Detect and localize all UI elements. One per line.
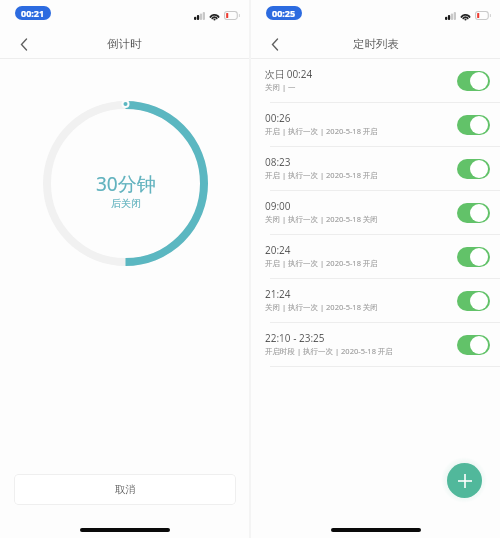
button[interactable]: Toggle alarm xyxy=(457,335,490,355)
staticText: 00:21 xyxy=(21,7,45,19)
staticText: 关闭 | 执行一次 | 2020-5-18 关闭 xyxy=(265,214,378,224)
staticText: 08:23 xyxy=(265,155,291,169)
staticText: 22:10 - 23:25 xyxy=(265,331,325,345)
staticText: 后关闭 xyxy=(111,197,141,210)
button[interactable]: Toggle alarm xyxy=(457,159,490,179)
button[interactable]: Back xyxy=(257,29,293,60)
staticText: 关闭 | 一 xyxy=(265,82,296,92)
staticText: 开启 | 执行一次 | 2020-5-18 开启 xyxy=(265,258,378,268)
button[interactable]: Toggle alarm xyxy=(457,291,490,311)
staticText: 开启时段 | 执行一次 | 2020-5-18 开启 xyxy=(265,346,393,356)
staticText: 倒计时 xyxy=(107,37,142,51)
button[interactable]: Toggle alarm xyxy=(457,247,490,267)
button[interactable]: 次日 00:24 xyxy=(251,59,500,103)
button[interactable]: Toggle alarm xyxy=(457,203,490,223)
button[interactable]: 22:10 - 23:25 xyxy=(251,323,500,367)
staticText: 关闭 | 执行一次 | 2020-5-18 关闭 xyxy=(265,302,378,312)
staticText: 取消 xyxy=(115,483,136,496)
staticText: 00:25 xyxy=(272,7,296,19)
staticText: 00:26 xyxy=(265,111,291,125)
button[interactable]: 取消 xyxy=(14,474,236,505)
button[interactable]: Toggle alarm xyxy=(457,115,490,135)
staticText: 30分钟 xyxy=(96,171,156,197)
staticText: 20:24 xyxy=(265,243,291,257)
button[interactable]: 08:23 xyxy=(251,147,500,191)
button[interactable]: Add alarm xyxy=(447,463,482,498)
button[interactable]: 20:24 xyxy=(251,235,500,279)
button[interactable]: Toggle alarm xyxy=(457,71,490,91)
button[interactable]: 00:26 xyxy=(251,103,500,147)
staticText: 09:00 xyxy=(265,199,291,213)
staticText: 开启 | 执行一次 | 2020-5-18 开启 xyxy=(265,170,378,180)
button[interactable]: 09:00 xyxy=(251,191,500,235)
staticText: 21:24 xyxy=(265,287,291,301)
button[interactable]: 21:24 xyxy=(251,279,500,323)
staticText: 开启 | 执行一次 | 2020-5-18 开启 xyxy=(265,126,378,136)
button[interactable]: Back xyxy=(6,29,42,60)
staticText: 定时列表 xyxy=(353,37,399,51)
staticText: 次日 00:24 xyxy=(265,67,313,81)
